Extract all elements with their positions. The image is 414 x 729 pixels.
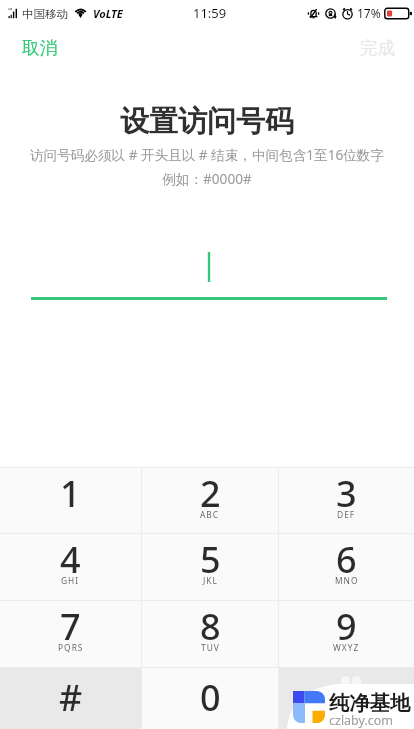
staticText: PQRS <box>58 642 84 653</box>
staticText: WXYZ <box>333 642 360 653</box>
staticText: JKL <box>203 575 218 586</box>
button[interactable]: 8 <box>142 601 278 667</box>
button[interactable]: 取消 <box>0 26 79 70</box>
button[interactable]: # <box>0 668 141 729</box>
staticText: 0 <box>200 673 221 722</box>
button[interactable]: 6 <box>279 534 414 600</box>
button[interactable]: 2 <box>142 468 278 533</box>
staticText: 完成 <box>360 37 395 59</box>
staticText: VoLTE <box>93 6 123 21</box>
staticText: 7 <box>60 602 81 651</box>
staticText: czlaby.com <box>329 712 394 729</box>
staticText: 17% <box>357 5 381 21</box>
staticText: GHI <box>61 575 80 586</box>
staticText: TUV <box>201 642 220 653</box>
button[interactable]: 4 <box>0 534 141 600</box>
staticText: 11:59 <box>193 4 227 22</box>
button[interactable]: 3 <box>279 468 414 533</box>
staticText: 4 <box>60 535 81 584</box>
button[interactable] <box>279 668 414 729</box>
button[interactable]: 0 <box>142 668 278 729</box>
staticText: MNO <box>335 575 359 586</box>
staticText: 设置访问号码 <box>0 103 414 140</box>
staticText: 6 <box>336 535 357 584</box>
staticText: 中国移动 <box>22 7 68 21</box>
button[interactable]: 完成 <box>341 26 414 70</box>
button[interactable]: 5 <box>142 534 278 600</box>
button[interactable]: 9 <box>279 601 414 667</box>
staticText: 9 <box>336 602 357 651</box>
button[interactable]: 1 <box>0 468 141 533</box>
button[interactable]: 7 <box>0 601 141 667</box>
staticText: DEF <box>337 509 356 520</box>
staticText: ABC <box>200 509 220 520</box>
staticText: # <box>59 673 83 722</box>
staticText: 1 <box>60 469 81 518</box>
staticText: 3 <box>336 469 357 518</box>
staticText: 例如：#0000# <box>0 169 414 188</box>
staticText: 8 <box>200 602 221 651</box>
staticText: 5 <box>200 535 221 584</box>
staticText: 访问号码必须以 # 开头且以 # 结束，中间包含1至16位数字 <box>0 145 414 164</box>
staticText: 取消 <box>22 37 57 59</box>
staticText: 2 <box>200 469 221 518</box>
staticText: 纯净基地 <box>329 690 411 716</box>
